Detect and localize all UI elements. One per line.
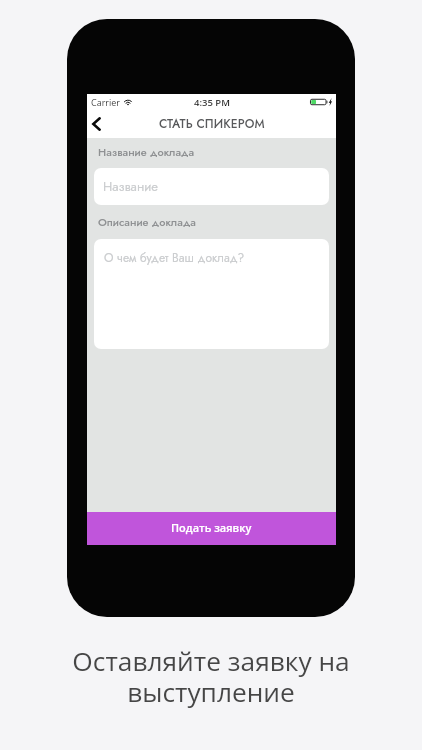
button[interactable]: Back (87, 112, 109, 138)
button[interactable]: Подать заявку (87, 512, 336, 545)
staticText: Carrier (91, 96, 121, 108)
staticText: СТАТЬ СПИКЕРОМ (159, 115, 265, 132)
staticText: 4:35 PM (194, 96, 230, 109)
staticText: Оставляйте заявку на выступление (56, 643, 366, 710)
button[interactable]: Название (94, 168, 329, 205)
staticText: Подать заявку (171, 520, 252, 535)
staticText: Название доклада (98, 144, 195, 160)
button[interactable]: О чем будет Ваш доклад? (94, 239, 329, 349)
staticText: Название (103, 177, 159, 196)
staticText: Описание доклада (98, 214, 196, 230)
staticText: О чем будет Ваш доклад? (104, 249, 245, 266)
